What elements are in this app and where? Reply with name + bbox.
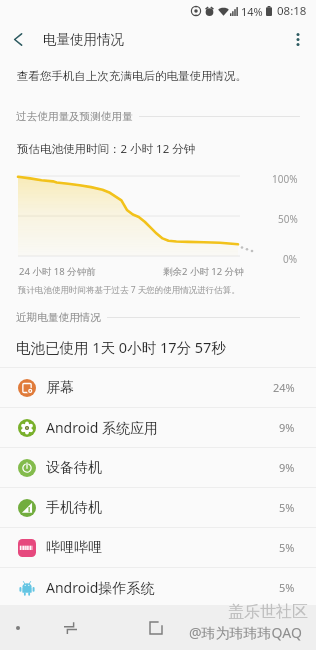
button[interactable]: Back xyxy=(0,25,36,53)
staticText: 0% xyxy=(283,252,298,266)
staticText: 查看您手机自上次充满电后的电量使用情况。 xyxy=(17,69,247,83)
staticText: 手机待机 xyxy=(46,499,102,517)
button[interactable]: Menu xyxy=(7,605,29,650)
staticText: 过去使用量及预测使用量 xyxy=(16,110,133,123)
staticText: 屏幕 xyxy=(46,379,74,397)
staticText: Android 系统应用 xyxy=(46,418,159,437)
staticText: 设备待机 xyxy=(46,459,102,477)
staticText: 24% xyxy=(273,380,295,395)
button[interactable]: 屏幕 xyxy=(0,368,316,407)
staticText: 剩余2 小时 12 分钟 xyxy=(163,265,244,278)
button[interactable]: Android操作系统 xyxy=(0,568,316,607)
button[interactable]: Recents xyxy=(52,605,88,650)
staticText: 预计电池使用时间将基于过去 7 天您的使用情况进行估算。 xyxy=(18,284,240,296)
button[interactable]: 设备待机 xyxy=(0,448,316,487)
button[interactable]: 手机待机 xyxy=(0,488,316,527)
button[interactable]: Back xyxy=(138,605,174,650)
staticText: Android操作系统 xyxy=(46,578,155,597)
button[interactable]: More options xyxy=(280,25,316,53)
staticText: 24 小时 18 分钟前 xyxy=(19,265,96,278)
staticText: 5% xyxy=(279,500,295,515)
staticText: 预估电池使用时间：2 小时 12 分钟 xyxy=(17,141,196,157)
staticText: 14% xyxy=(241,4,263,19)
staticText: 电池已使用 1天 0小时 17分 57秒 xyxy=(16,337,226,357)
staticText: 哔哩哔哩 xyxy=(46,539,102,557)
staticText: 盖乐世社区 xyxy=(228,602,308,622)
staticText: @玮为玮玮玮QAQ xyxy=(189,623,302,642)
staticText: 9% xyxy=(279,460,295,475)
staticText: 近期电量使用情况 xyxy=(16,311,101,324)
button[interactable]: Android 系统应用 xyxy=(0,408,316,447)
staticText: 电量使用情况 xyxy=(43,31,124,48)
staticText: 08:18 xyxy=(277,3,307,19)
staticText: 5% xyxy=(279,580,295,595)
staticText: 5% xyxy=(279,540,295,555)
staticText: 9% xyxy=(279,420,295,435)
staticText: 50% xyxy=(278,212,298,226)
staticText: 100% xyxy=(272,172,298,186)
button[interactable]: 哔哩哔哩 xyxy=(0,528,316,567)
